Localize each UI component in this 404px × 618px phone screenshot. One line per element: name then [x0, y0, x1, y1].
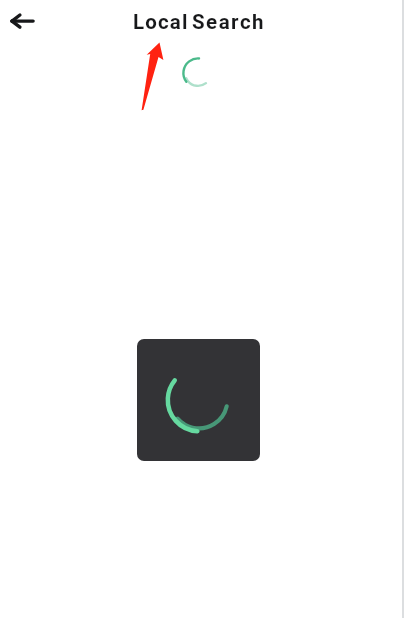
button[interactable]: Back — [0, 3, 45, 39]
staticText: Search — [192, 10, 266, 34]
staticText: Local — [133, 10, 189, 34]
button[interactable] — [137, 339, 260, 461]
